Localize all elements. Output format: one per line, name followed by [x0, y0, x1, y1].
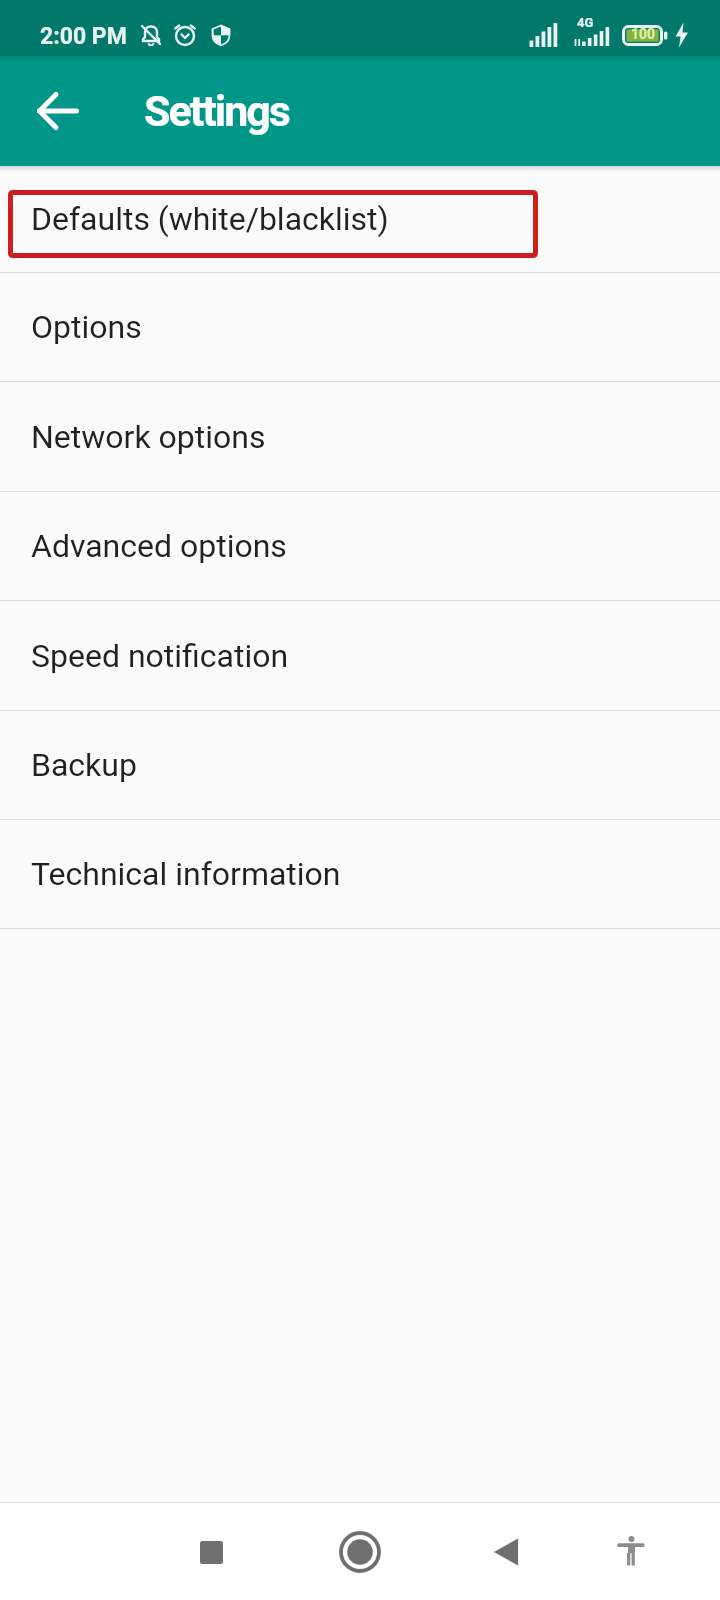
button[interactable]	[458, 1504, 554, 1600]
button[interactable]	[20, 73, 96, 149]
staticText: Speed notification	[31, 637, 289, 675]
button[interactable]: Options	[0, 273, 720, 381]
button[interactable]: Speed notification	[0, 601, 720, 710]
staticText: 2:00 PM	[40, 23, 127, 50]
staticText: Network options	[31, 418, 266, 456]
staticText: Settings	[144, 86, 289, 136]
staticText: 4G	[577, 15, 594, 30]
staticText: 100	[631, 26, 656, 42]
staticText: Defaults (white/blacklist)	[31, 200, 389, 238]
staticText: Options	[31, 308, 142, 346]
staticText: Backup	[31, 746, 137, 784]
button[interactable]: Technical information	[0, 820, 720, 928]
button[interactable]	[583, 1504, 679, 1600]
button[interactable]: Advanced options	[0, 492, 720, 600]
button[interactable]: Defaults (white/blacklist)	[0, 166, 720, 272]
staticText: Advanced options	[31, 527, 287, 565]
button[interactable]: Network options	[0, 382, 720, 491]
button[interactable]: Backup	[0, 711, 720, 819]
button[interactable]	[312, 1504, 408, 1600]
button[interactable]	[163, 1504, 259, 1600]
staticText: Technical information	[31, 855, 341, 893]
